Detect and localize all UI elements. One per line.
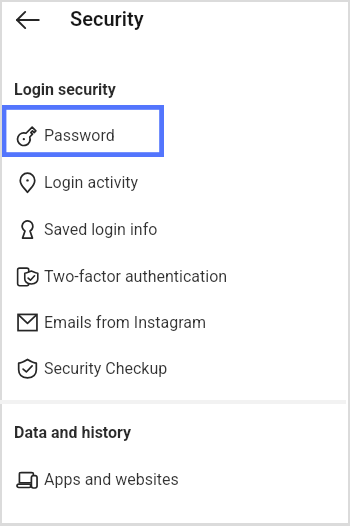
staticText: Login activity bbox=[44, 173, 139, 192]
button[interactable]: Password bbox=[2, 114, 348, 156]
staticText: Apps and websites bbox=[44, 470, 179, 489]
button[interactable]: Emails from Instagram bbox=[2, 301, 348, 343]
button[interactable]: Apps and websites bbox=[2, 458, 348, 500]
staticText: Login security bbox=[14, 80, 116, 99]
button[interactable]: Back bbox=[12, 5, 42, 35]
staticText: Data and history bbox=[14, 423, 132, 442]
staticText: Saved login info bbox=[44, 220, 158, 239]
staticText: Two-factor authentication bbox=[44, 267, 228, 286]
staticText: Security bbox=[70, 7, 144, 30]
button[interactable]: Login activity bbox=[2, 161, 348, 203]
staticText: Password bbox=[44, 126, 115, 145]
staticText: Emails from Instagram bbox=[44, 313, 206, 332]
button[interactable]: Two-factor authentication bbox=[2, 255, 348, 297]
button[interactable]: Saved login info bbox=[2, 208, 348, 250]
button[interactable]: Security Checkup bbox=[2, 347, 348, 389]
staticText: Security Checkup bbox=[44, 359, 168, 378]
button[interactable] bbox=[2, 105, 164, 157]
